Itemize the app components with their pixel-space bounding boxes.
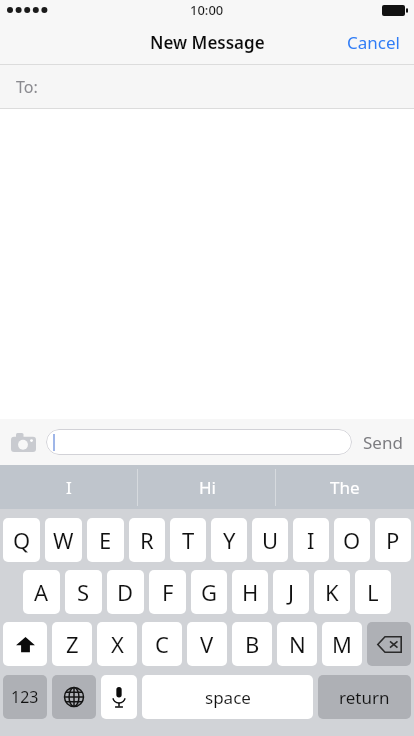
button[interactable]: space [142,675,313,719]
button[interactable]: I [293,518,329,562]
button[interactable] [46,429,352,455]
staticText: Z [66,629,79,659]
button[interactable]: B [232,622,272,666]
button[interactable]: Y [211,518,247,562]
staticText: E [99,525,112,555]
button[interactable]: D [107,570,144,614]
staticText: H [242,577,259,607]
button[interactable]: Camera [0,419,46,465]
button[interactable]: M [322,622,362,666]
staticText: Hi [199,476,216,499]
button[interactable]: Q [3,518,40,562]
staticText: X [111,629,124,659]
button[interactable]: Hi [138,465,276,509]
staticText: K [325,577,339,607]
staticText: N [289,629,306,659]
staticText: 10:00 [190,1,224,19]
button[interactable]: N [277,622,317,666]
button[interactable]: L [355,570,391,614]
staticText: A [34,577,49,607]
staticText: D [117,577,134,607]
button[interactable]: H [232,570,268,614]
button[interactable]: I [0,465,138,509]
button[interactable]: X [97,622,137,666]
staticText: I [307,525,315,555]
button[interactable]: V [187,622,227,666]
button[interactable]: J [273,570,309,614]
staticText: C [155,629,169,659]
staticText: P [386,525,400,555]
staticText: New Message [150,31,265,54]
button[interactable]: T [170,518,206,562]
staticText: Q [13,525,31,555]
staticText: O [343,525,361,555]
staticText: Send [363,431,403,454]
button[interactable]: S [65,570,102,614]
staticText: R [140,525,154,555]
button[interactable]: W [45,518,82,562]
button[interactable]: To: [0,65,414,108]
staticText: S [77,577,90,607]
staticText: I [66,476,72,499]
staticText: Cancel [347,31,400,54]
staticText: M [332,629,352,659]
button[interactable]: Dictation [101,675,137,719]
staticText: J [288,577,295,607]
staticText: B [245,629,260,659]
staticText: L [367,577,379,607]
button[interactable]: K [314,570,350,614]
button[interactable]: return [318,675,411,719]
button[interactable]: P [375,518,411,562]
staticText: To: [16,76,38,98]
staticText: 123 [11,686,39,708]
button[interactable]: C [142,622,182,666]
button[interactable]: Change keyboard [52,675,96,719]
button[interactable]: 123 [3,675,47,719]
staticText: space [205,686,251,709]
button[interactable]: Z [52,622,92,666]
staticText: Y [223,525,236,555]
button[interactable]: A [23,570,60,614]
staticText: The [330,476,360,499]
button[interactable]: Send [352,419,414,465]
button[interactable]: O [334,518,370,562]
button[interactable]: R [129,518,165,562]
button[interactable]: G [191,570,227,614]
staticText: G [201,577,218,607]
button[interactable]: F [149,570,186,614]
button[interactable]: U [252,518,288,562]
button[interactable]: E [87,518,124,562]
button[interactable]: Backspace [367,622,411,666]
staticText: return [339,686,390,709]
button[interactable]: The [276,465,414,509]
button[interactable]: Cancel [333,20,414,64]
staticText: F [162,577,174,607]
staticText: W [53,525,74,555]
staticText: U [262,525,279,555]
staticText: T [182,525,195,555]
staticText: V [200,629,214,659]
button[interactable]: Shift [3,622,47,666]
